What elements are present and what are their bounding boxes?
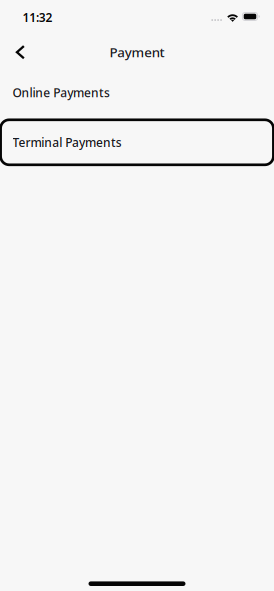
staticText: 11:32 xyxy=(23,9,53,25)
button[interactable]: Terminal Payments xyxy=(0,120,274,165)
button[interactable]: Back xyxy=(5,37,35,67)
staticText: Terminal Payments xyxy=(12,134,122,150)
staticText: Payment xyxy=(109,43,165,61)
button[interactable]: Online Payments xyxy=(0,70,274,115)
staticText: Online Payments xyxy=(12,85,110,101)
